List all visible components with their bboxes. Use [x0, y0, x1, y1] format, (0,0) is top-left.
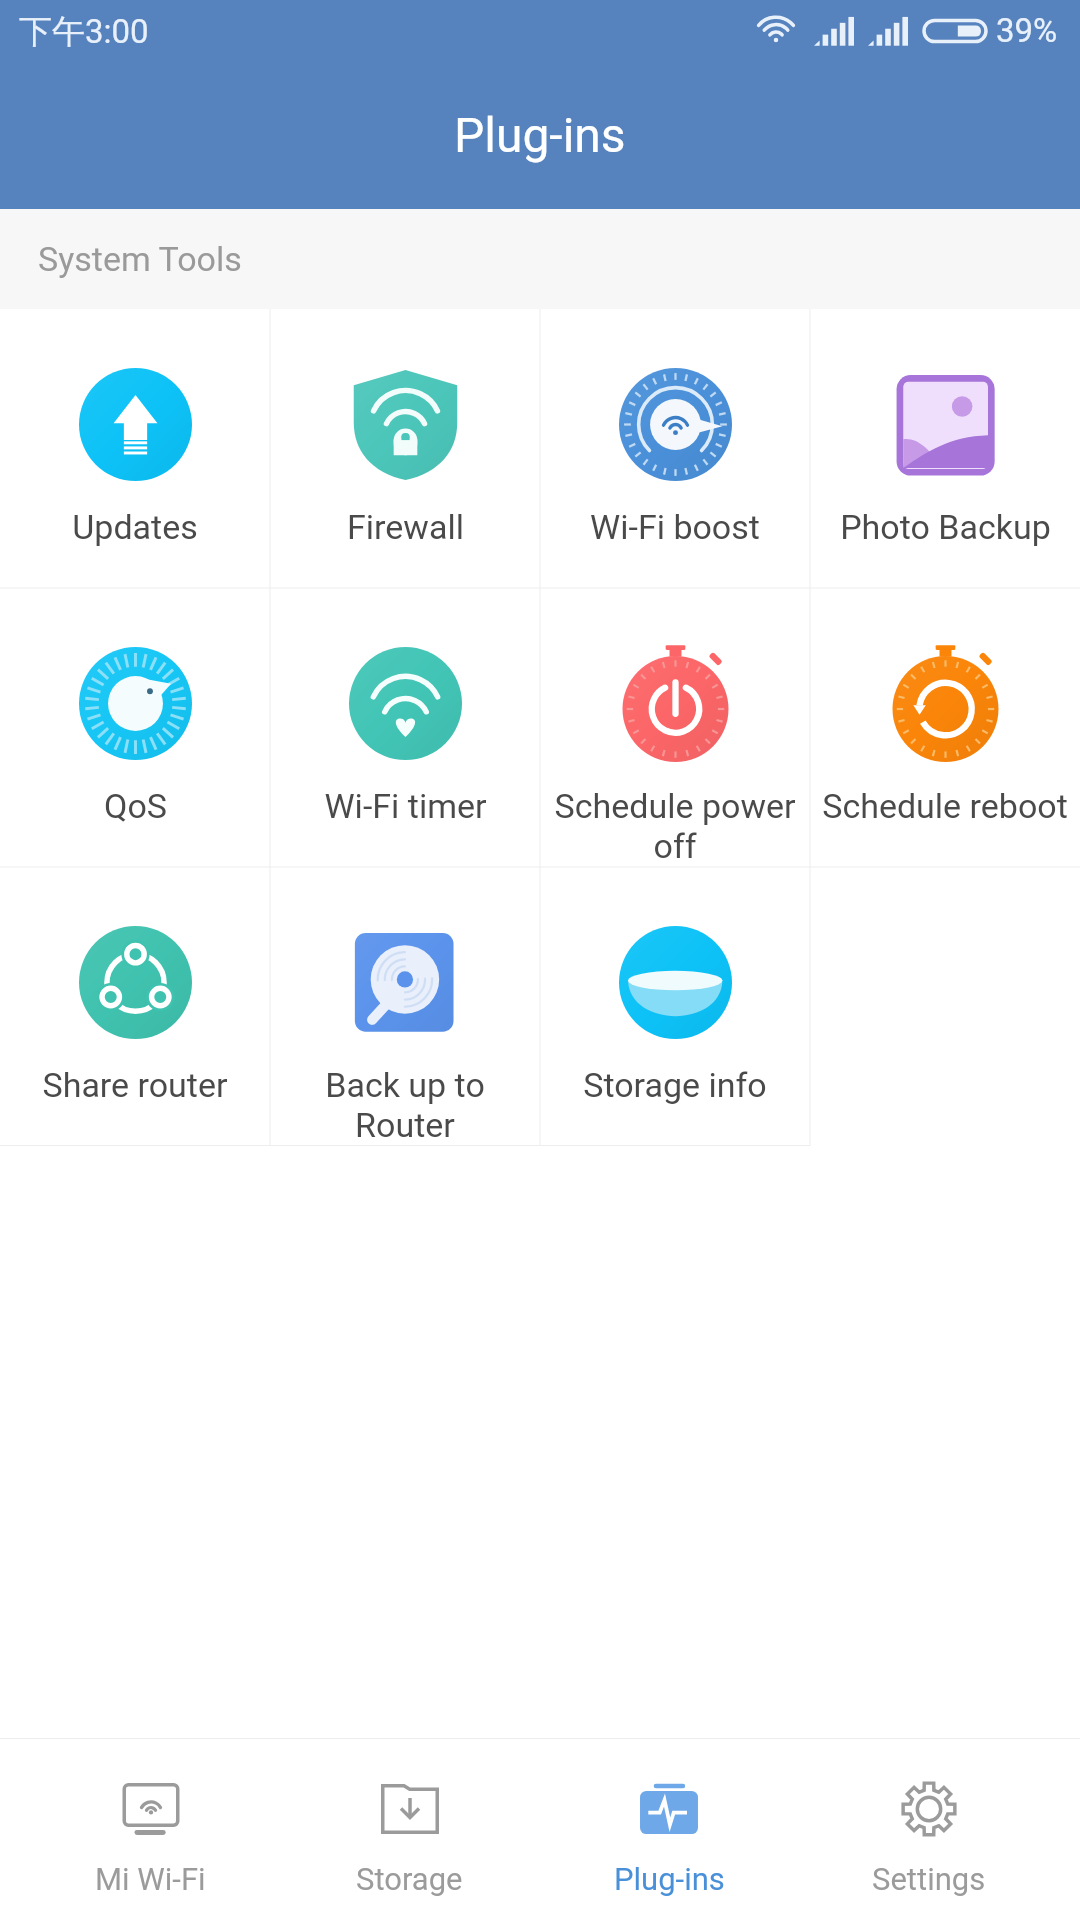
button[interactable]: Wi-Fi boost [540, 309, 810, 588]
button[interactable]: QoS [0, 588, 270, 867]
staticText: QoS [104, 786, 167, 826]
staticText: Schedule power off [546, 786, 804, 866]
button[interactable]: Updates [0, 309, 270, 588]
staticText: Back up to Router [276, 1065, 534, 1145]
staticText: Firewall [347, 507, 464, 547]
button[interactable]: Mi Wi-Fi [21, 1739, 280, 1920]
staticText: Schedule reboot [822, 786, 1068, 826]
staticText: Settings [872, 1861, 986, 1897]
staticText: 下午3:00 [19, 11, 149, 53]
staticText: Wi-Fi timer [324, 786, 487, 826]
staticText: Photo Backup [840, 507, 1051, 547]
staticText: System Tools [38, 239, 242, 279]
button[interactable]: Firewall [270, 309, 540, 588]
staticText: Plug-ins [614, 1861, 725, 1897]
button[interactable]: Schedule power off [540, 588, 810, 867]
button[interactable]: Schedule reboot [810, 588, 1080, 867]
button[interactable]: Photo Backup [810, 309, 1080, 588]
staticText: Wi-Fi boost [590, 507, 760, 547]
button[interactable]: Storage [280, 1739, 539, 1920]
staticText: Plug-ins [454, 107, 626, 163]
button[interactable]: Wi-Fi timer [270, 588, 540, 867]
button[interactable]: Share router [0, 867, 270, 1146]
button[interactable]: Settings [799, 1739, 1059, 1920]
button[interactable]: Storage info [540, 867, 810, 1146]
staticText: Mi Wi-Fi [95, 1861, 206, 1897]
staticText: Share router [42, 1065, 228, 1105]
staticText: Updates [72, 507, 198, 547]
staticText: 39% [996, 11, 1058, 50]
staticText: Storage info [583, 1065, 767, 1105]
staticText: Storage [356, 1861, 463, 1897]
button[interactable]: Plug-ins [539, 1739, 799, 1920]
button[interactable]: Back up to Router [270, 867, 540, 1146]
